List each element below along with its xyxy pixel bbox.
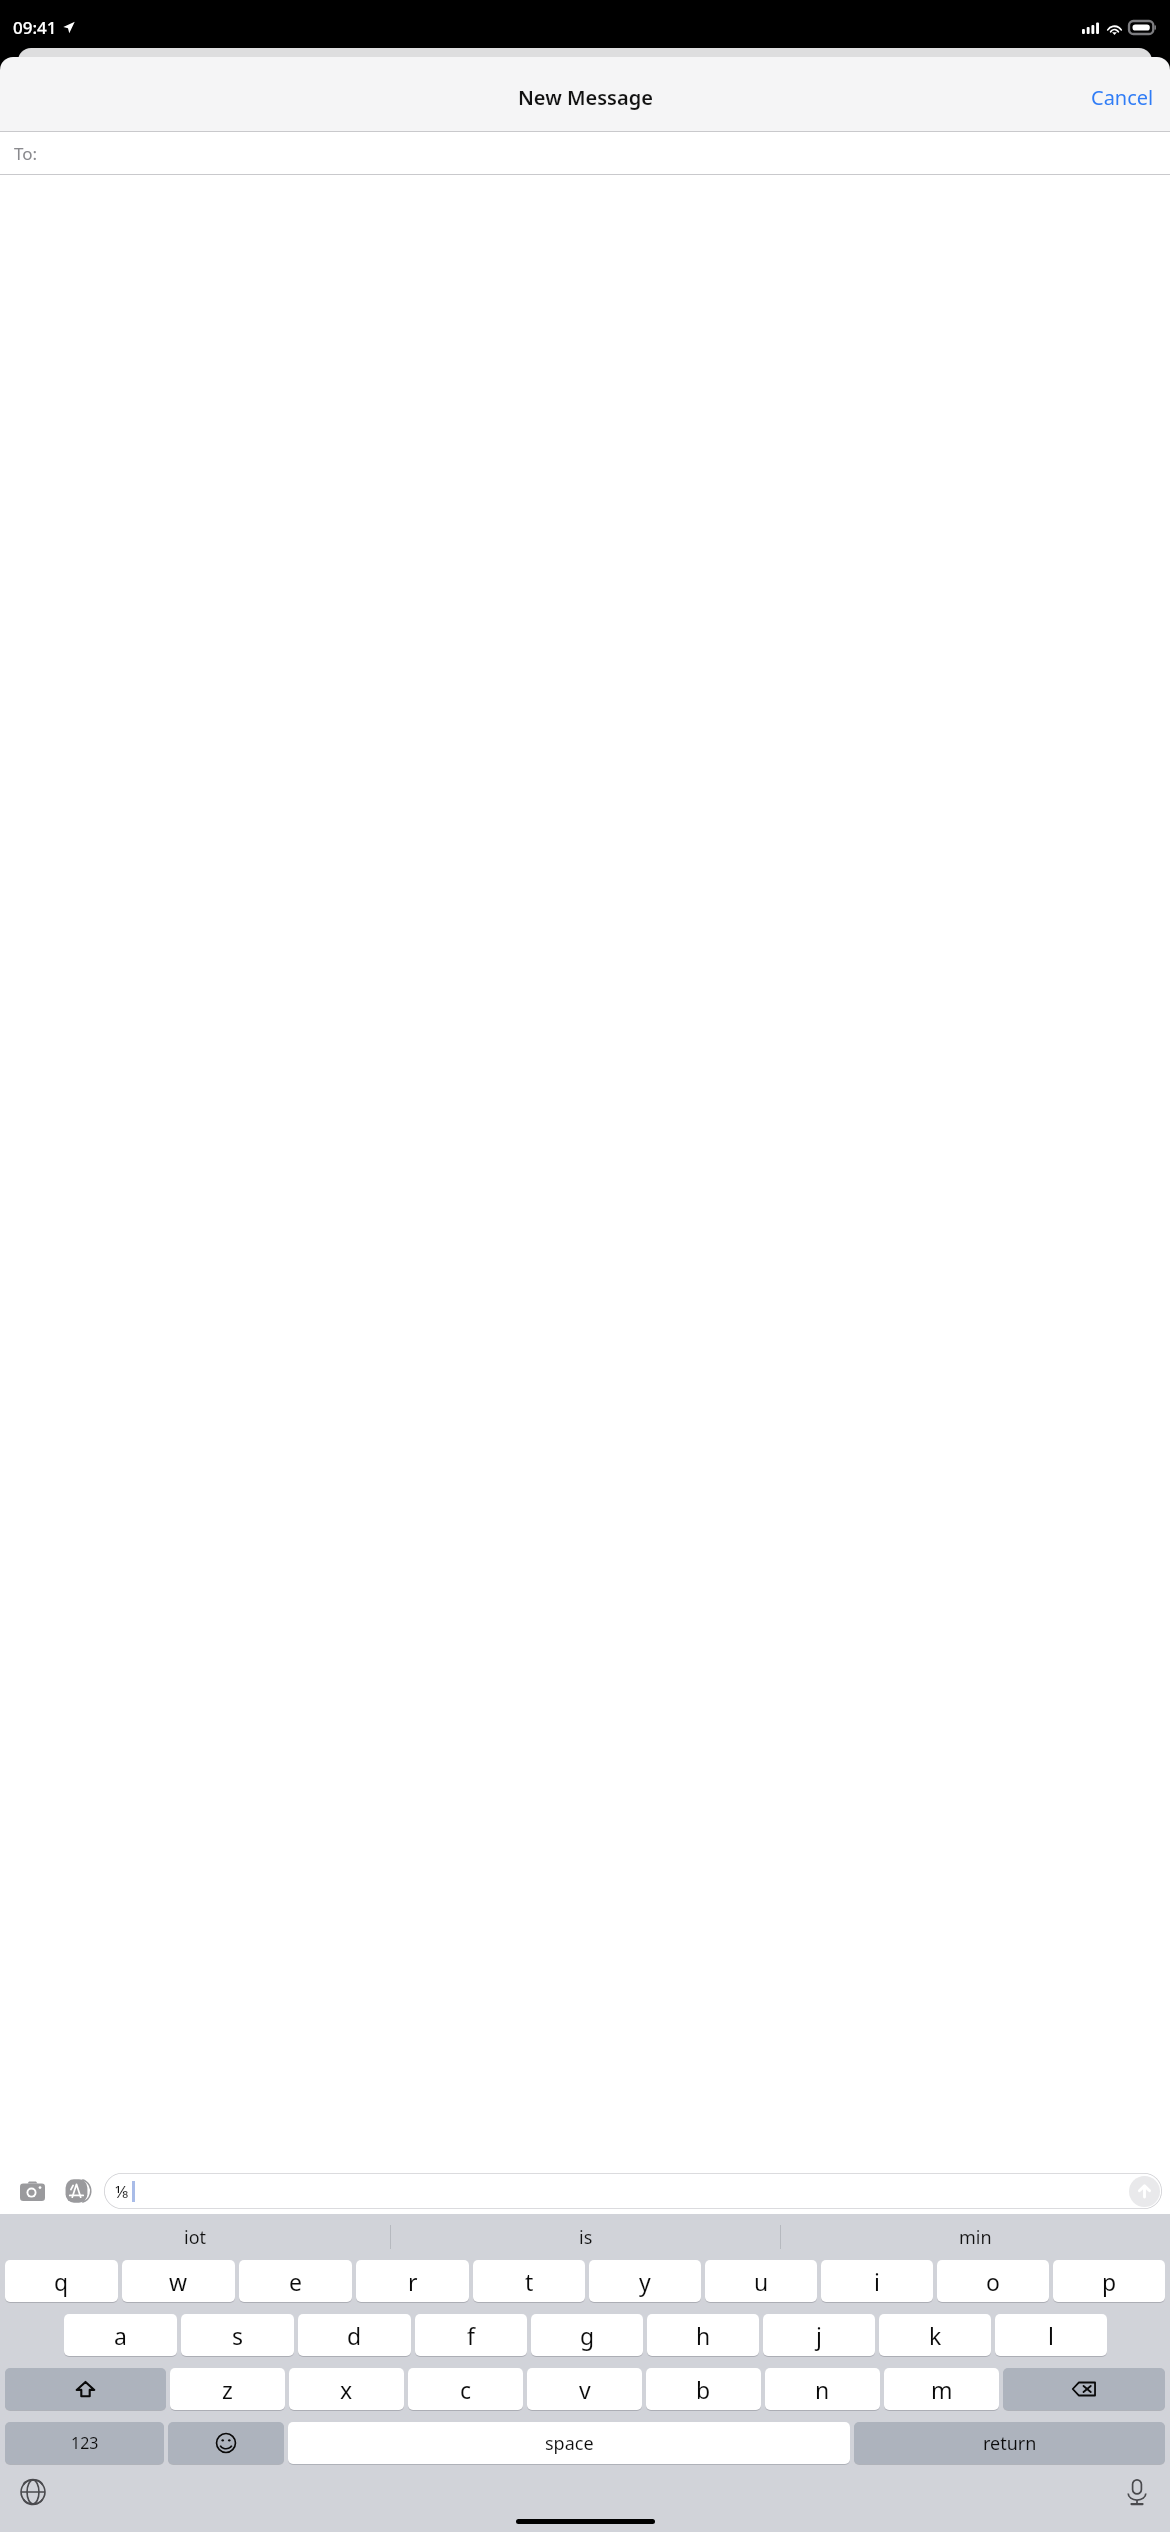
staticText: m [931,2374,953,2405]
staticText: o [986,2266,1000,2297]
button[interactable]: 123 [5,2422,164,2464]
staticText: c [460,2374,472,2405]
button[interactable]: r [356,2260,469,2302]
button[interactable]: y [589,2260,701,2302]
button[interactable]: ⅛ [104,2173,1162,2209]
button[interactable]: e [239,2260,352,2302]
button[interactable]: k [879,2314,991,2356]
staticText: u [754,2266,769,2297]
staticText: 123 [71,2432,99,2454]
staticText: New Message [518,84,653,111]
button[interactable]: v [527,2368,642,2410]
button[interactable]: is [391,2214,780,2260]
staticText: ⅛ [115,2180,130,2203]
staticText: w [169,2266,188,2297]
staticText: is [579,2225,593,2250]
button[interactable]: a [64,2314,177,2356]
staticText: k [929,2320,942,2351]
staticText: b [696,2374,711,2405]
staticText: f [467,2320,475,2351]
staticText: d [347,2320,362,2351]
button[interactable]: i [821,2260,933,2302]
button[interactable]: x [289,2368,404,2410]
staticText: iot [184,2225,207,2250]
button[interactable]: h [647,2314,759,2356]
button[interactable]: b [646,2368,761,2410]
button[interactable]: Send [1129,2176,1160,2207]
button[interactable]: To: [0,132,1170,174]
staticText: a [114,2320,127,2351]
staticText: 09:41 [13,16,57,39]
staticText: space [545,2431,594,2456]
staticText: h [696,2320,711,2351]
staticText: j [816,2320,822,2351]
staticText: r [408,2266,418,2297]
staticText: l [1048,2320,1054,2351]
staticText: q [54,2266,69,2297]
button[interactable]: t [473,2260,585,2302]
staticText: t [525,2266,534,2297]
staticText: return [983,2431,1037,2456]
button[interactable]: App Store [57,2169,101,2213]
button[interactable]: Cancel [1075,76,1170,119]
staticText: g [580,2320,595,2351]
button[interactable]: n [765,2368,880,2410]
staticText: i [874,2266,880,2297]
button[interactable]: iot [0,2214,390,2260]
button[interactable]: o [937,2260,1049,2302]
staticText: e [289,2266,302,2297]
button[interactable]: Change keyboard [13,2472,53,2512]
staticText: p [1102,2266,1117,2297]
button[interactable]: Camera [10,2169,54,2213]
button[interactable]: return [854,2422,1165,2464]
staticText: min [959,2225,992,2250]
button[interactable]: Emoji [168,2422,284,2464]
button[interactable]: w [122,2260,235,2302]
staticText: x [340,2374,353,2405]
button[interactable]: q [5,2260,118,2302]
button[interactable]: c [408,2368,523,2410]
button[interactable]: d [298,2314,411,2356]
button[interactable]: l [995,2314,1107,2356]
button[interactable]: Shift [5,2368,166,2410]
staticText: Cancel [1091,84,1154,111]
button[interactable]: Dictation [1117,2472,1157,2512]
button[interactable]: p [1053,2260,1165,2302]
button[interactable]: z [170,2368,285,2410]
button[interactable]: u [705,2260,817,2302]
staticText: z [222,2374,233,2405]
staticText: To: [14,142,38,165]
button[interactable]: m [884,2368,999,2410]
button[interactable]: f [415,2314,527,2356]
button[interactable]: j [763,2314,875,2356]
staticText: y [639,2266,651,2297]
button[interactable]: g [531,2314,643,2356]
staticText: s [232,2320,244,2351]
button[interactable]: space [288,2422,850,2464]
button[interactable]: s [181,2314,294,2356]
staticText: n [815,2374,830,2405]
staticText: v [579,2374,591,2405]
button[interactable]: Backspace [1003,2368,1165,2410]
button[interactable]: min [781,2214,1170,2260]
